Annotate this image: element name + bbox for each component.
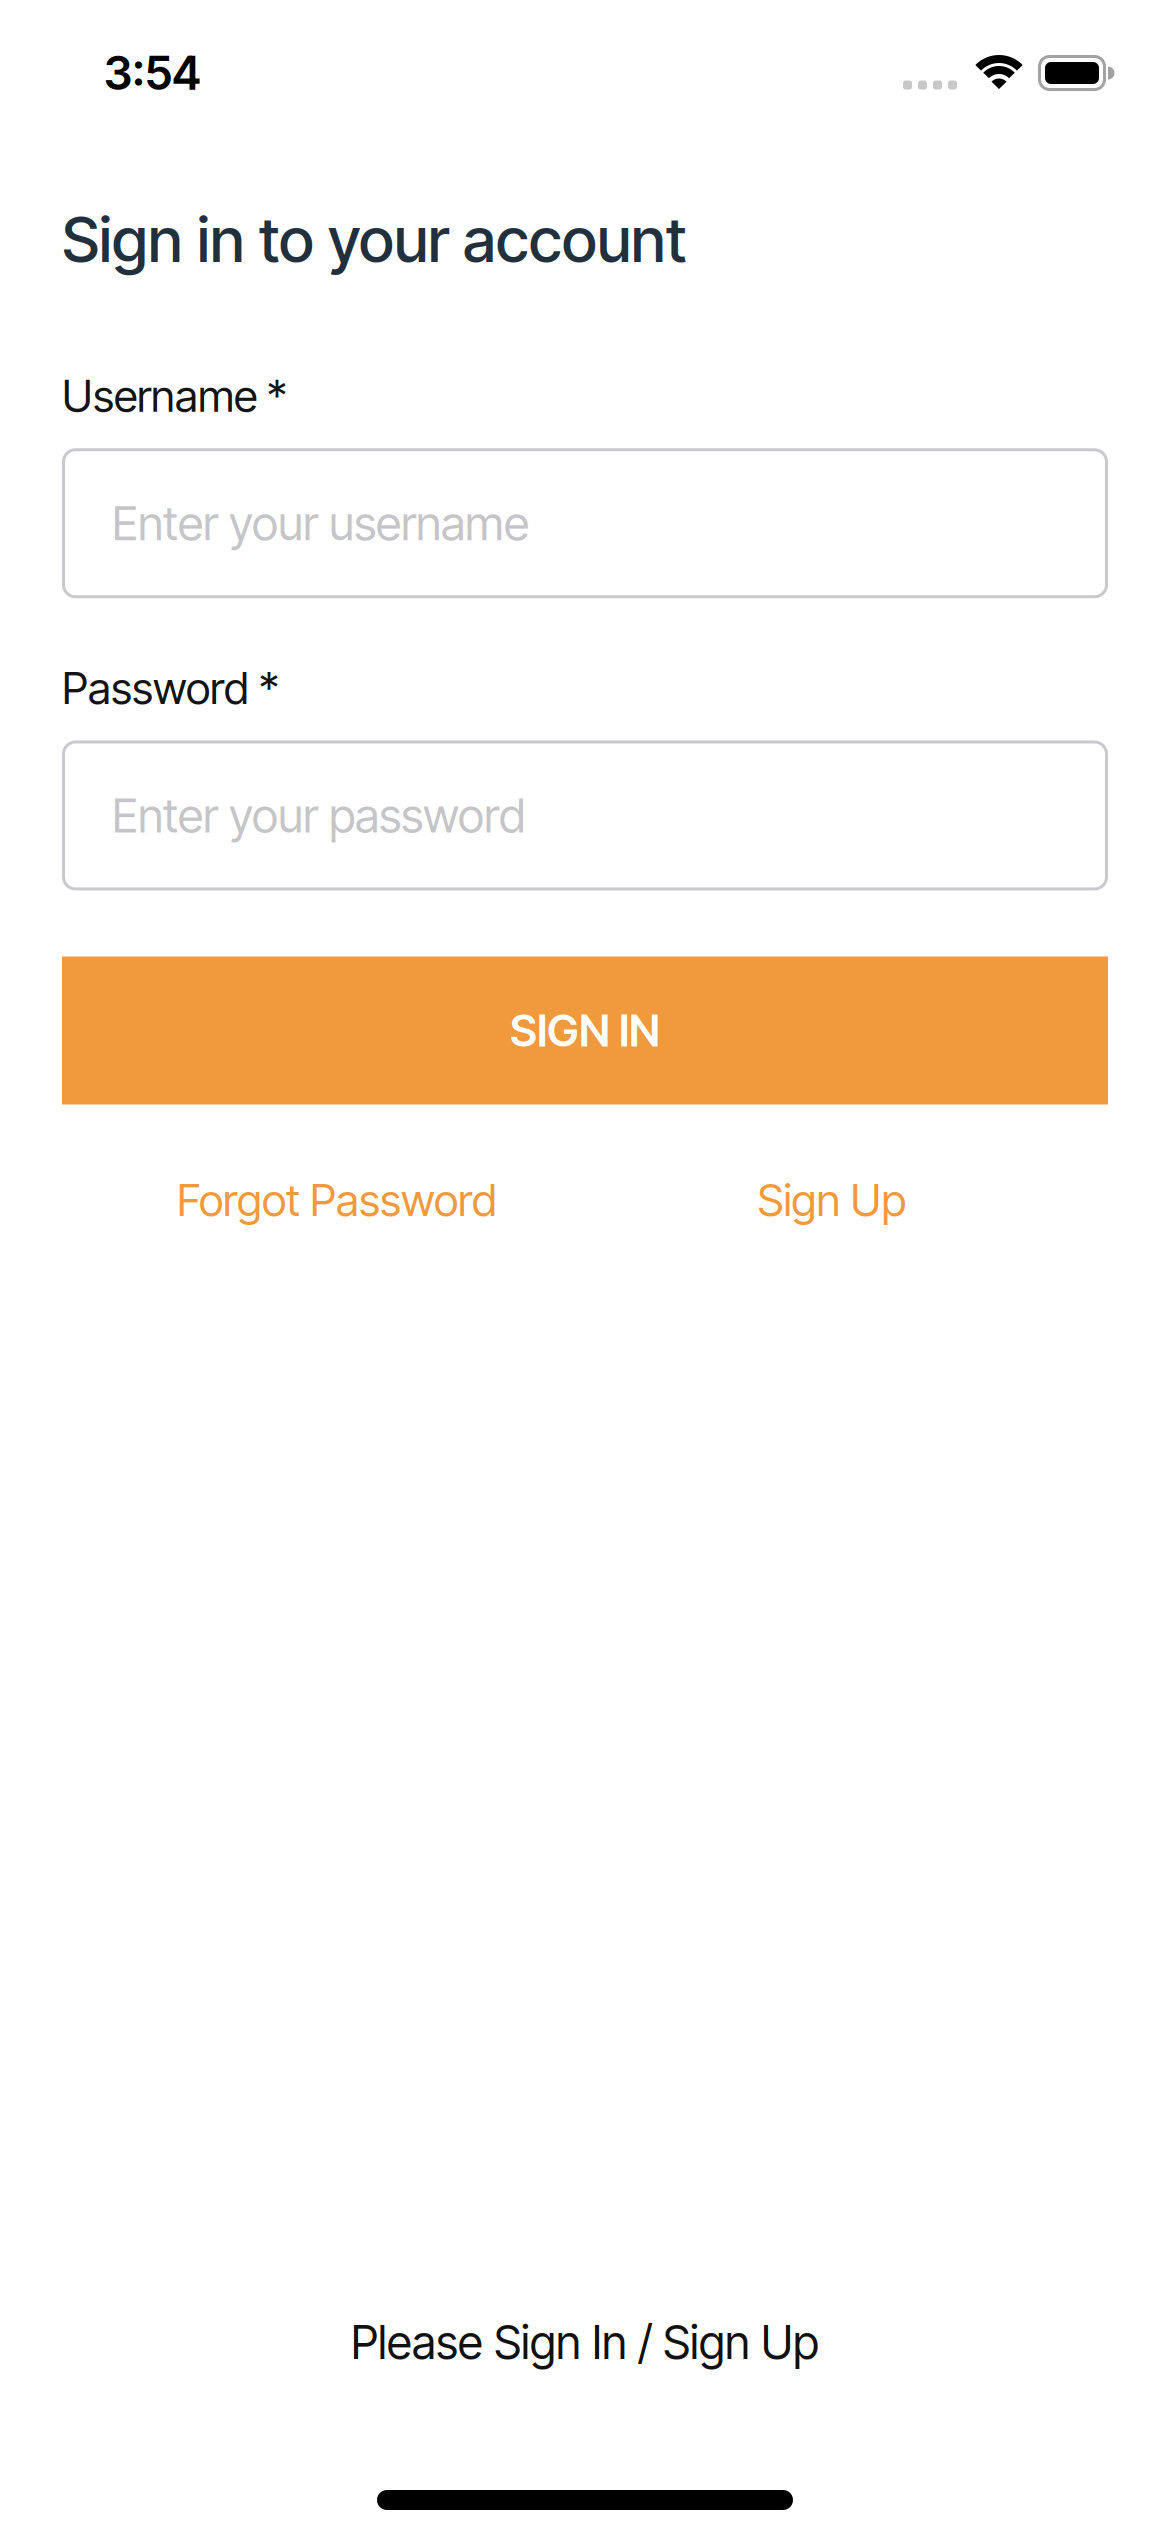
- staticText: SIGN IN: [510, 1004, 660, 1057]
- button[interactable]: SIGN IN: [62, 956, 1108, 1104]
- staticText: Username *: [62, 369, 287, 422]
- staticText: Forgot Password: [177, 1173, 497, 1227]
- button[interactable]: Enter your username: [62, 448, 1108, 598]
- staticText: Password *: [62, 661, 279, 714]
- button[interactable]: Forgot Password: [87, 1173, 587, 1227]
- button[interactable]: Sign Up: [587, 1173, 1077, 1227]
- staticText: Sign Up: [757, 1173, 906, 1227]
- staticText: Enter your password: [112, 787, 525, 844]
- staticText: Sign in to your account: [62, 202, 686, 277]
- staticText: Enter your username: [112, 495, 529, 552]
- staticText: 3:54: [104, 45, 201, 101]
- button[interactable]: Enter your password: [62, 740, 1108, 890]
- staticText: Please Sign In / Sign Up: [351, 2314, 819, 2370]
